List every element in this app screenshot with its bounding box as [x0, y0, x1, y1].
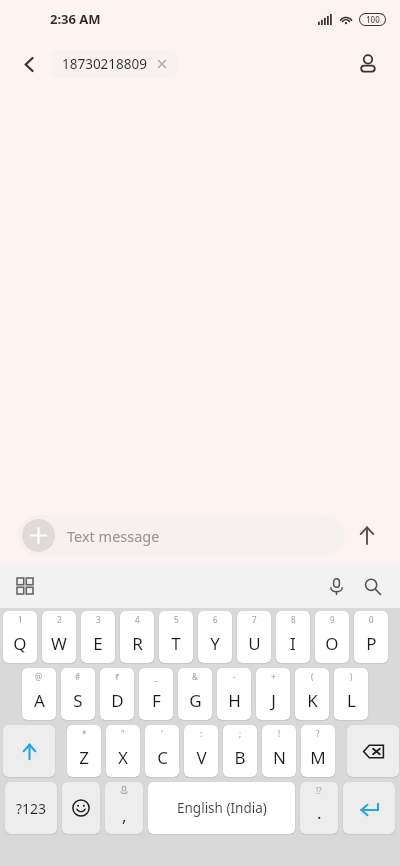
- staticText: J: [271, 689, 276, 712]
- button[interactable]: Emoji: [62, 782, 100, 834]
- button[interactable]: (: [295, 668, 329, 720]
- staticText: 5: [174, 614, 179, 625]
- button[interactable]: &: [178, 668, 212, 720]
- staticText: Q: [13, 632, 27, 655]
- button[interactable]: 9: [315, 611, 349, 663]
- button[interactable]: 5: [159, 611, 193, 663]
- staticText: S: [73, 689, 83, 712]
- button[interactable]: *: [67, 725, 101, 777]
- button[interactable]: ,: [105, 782, 143, 834]
- button[interactable]: 18730218809: [52, 50, 177, 78]
- staticText: English (India): [177, 799, 267, 817]
- staticText: ?123: [16, 799, 47, 818]
- staticText: 4: [135, 614, 140, 625]
- staticText: 8: [291, 614, 296, 625]
- button[interactable]: ?123: [5, 782, 57, 834]
- staticText: 0: [369, 614, 374, 625]
- staticText: 3: [96, 614, 101, 625]
- staticText: P: [366, 632, 377, 655]
- staticText: :: [200, 728, 203, 739]
- staticText: B: [234, 746, 246, 769]
- staticText: L: [347, 689, 356, 712]
- staticText: Y: [210, 632, 220, 655]
- staticText: 2:36 AM: [50, 10, 101, 28]
- button[interactable]: Contact details: [348, 44, 388, 84]
- staticText: U: [248, 632, 261, 655]
- button[interactable]: ?: [301, 725, 335, 777]
- staticText: D: [111, 689, 124, 712]
- staticText: O: [325, 632, 339, 655]
- button[interactable]: Shift: [3, 725, 55, 777]
- button[interactable]: Keyboard menu: [8, 569, 42, 603]
- button[interactable]: Add attachment: [18, 515, 345, 556]
- staticText: V: [196, 746, 207, 769]
- button[interactable]: 7: [237, 611, 271, 663]
- button[interactable]: ;: [223, 725, 257, 777]
- staticText: ": [121, 728, 125, 739]
- button[interactable]: ": [106, 725, 140, 777]
- button[interactable]: ): [334, 668, 368, 720]
- staticText: Text message: [67, 526, 160, 546]
- button[interactable]: 8: [276, 611, 310, 663]
- staticText: T: [171, 632, 181, 655]
- button[interactable]: -: [217, 668, 251, 720]
- staticText: W: [51, 632, 67, 655]
- staticText: I: [290, 632, 296, 655]
- button[interactable]: +: [256, 668, 290, 720]
- staticText: ): [350, 671, 353, 682]
- staticText: *: [82, 728, 87, 739]
- staticText: 7: [252, 614, 257, 625]
- staticText: Z: [79, 746, 89, 769]
- button[interactable]: 3: [81, 611, 115, 663]
- button[interactable]: 2: [42, 611, 76, 663]
- button[interactable]: @: [22, 668, 56, 720]
- staticText: N: [273, 746, 286, 769]
- staticText: ?: [316, 728, 320, 739]
- staticText: ;: [239, 728, 242, 739]
- staticText: X: [118, 746, 128, 769]
- staticText: C: [157, 746, 168, 769]
- staticText: G: [189, 689, 202, 712]
- button[interactable]: ': [145, 725, 179, 777]
- staticText: @: [35, 671, 43, 682]
- button[interactable]: Send: [347, 515, 387, 555]
- staticText: 6: [213, 614, 218, 625]
- button[interactable]: Add attachment: [22, 519, 55, 552]
- button[interactable]: _: [139, 668, 173, 720]
- staticText: R: [132, 632, 143, 655]
- button[interactable]: Search: [354, 568, 390, 604]
- staticText: .: [317, 801, 322, 824]
- staticText: 18730218809: [62, 55, 147, 73]
- button[interactable]: Enter: [343, 782, 395, 834]
- button[interactable]: :: [184, 725, 218, 777]
- staticText: &: [192, 671, 198, 682]
- button[interactable]: ₹: [100, 668, 134, 720]
- staticText: !?: [316, 785, 322, 796]
- button[interactable]: !?: [300, 782, 338, 834]
- staticText: 100: [366, 14, 380, 25]
- staticText: 1: [18, 614, 23, 625]
- staticText: K: [307, 689, 318, 712]
- staticText: F: [152, 689, 161, 712]
- button[interactable]: !: [262, 725, 296, 777]
- staticText: #: [75, 671, 81, 682]
- staticText: A: [34, 689, 45, 712]
- staticText: 9: [330, 614, 335, 625]
- staticText: 2: [57, 614, 62, 625]
- button[interactable]: Backspace: [347, 725, 399, 777]
- staticText: ': [161, 728, 163, 739]
- button[interactable]: 0: [354, 611, 388, 663]
- button[interactable]: #: [61, 668, 95, 720]
- button[interactable]: English (India): [148, 782, 295, 834]
- staticText: _: [154, 671, 158, 682]
- button[interactable]: Voice input: [318, 568, 354, 604]
- button[interactable]: Back: [10, 45, 48, 83]
- staticText: ₹: [115, 671, 120, 682]
- button[interactable]: 1: [3, 611, 37, 663]
- staticText: !: [278, 728, 281, 739]
- button[interactable]: 6: [198, 611, 232, 663]
- staticText: H: [228, 689, 241, 712]
- staticText: E: [93, 632, 103, 655]
- button[interactable]: 4: [120, 611, 154, 663]
- staticText: -: [233, 671, 236, 682]
